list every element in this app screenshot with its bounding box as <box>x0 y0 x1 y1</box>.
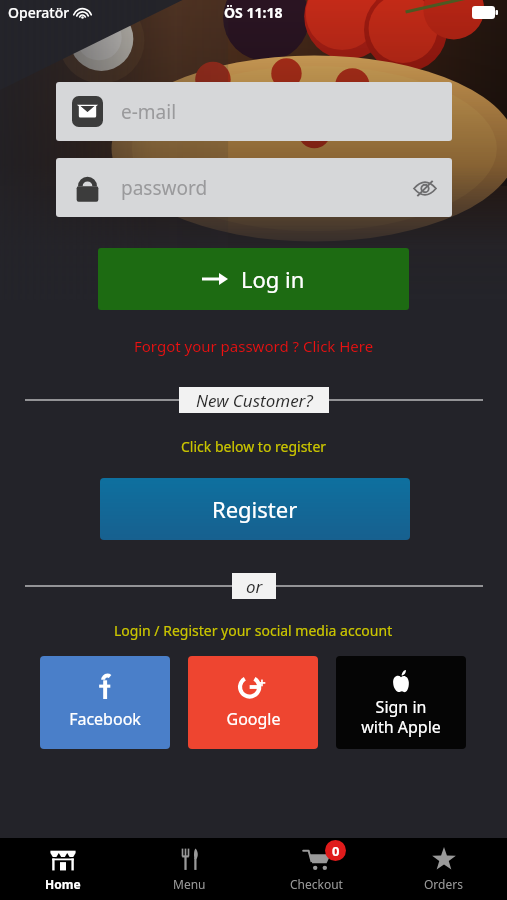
staticText: Checkout <box>290 876 343 892</box>
staticText: ÖS 11:18 <box>224 3 283 22</box>
staticText: Forgot your password ? Click Here <box>134 336 374 356</box>
button[interactable]: Register <box>100 478 410 540</box>
staticText: password <box>121 175 208 201</box>
button[interactable]: Menu <box>126 838 253 900</box>
button[interactable]: Show password <box>404 167 446 209</box>
staticText: e-mail <box>121 99 177 125</box>
button[interactable]: Log in <box>98 248 409 310</box>
button[interactable]: Google <box>188 656 318 749</box>
staticText: Sign in with Apple <box>361 696 441 737</box>
staticText: 0 <box>332 842 340 860</box>
button[interactable]: Forgot your password ? Click Here <box>0 336 507 356</box>
staticText: New Customer? <box>196 389 313 412</box>
button[interactable]: Home <box>0 838 126 900</box>
staticText: Home <box>45 876 81 892</box>
staticText: Operatör <box>8 3 70 22</box>
staticText: Register <box>212 494 298 524</box>
button[interactable]: password <box>56 158 452 217</box>
staticText: or <box>246 575 263 598</box>
button[interactable]: Orders <box>380 838 507 900</box>
button[interactable]: e-mail <box>56 82 452 141</box>
staticText: Facebook <box>69 708 141 730</box>
button[interactable]: 0 <box>253 838 380 900</box>
staticText: Google <box>226 708 281 730</box>
button[interactable]: Facebook <box>40 656 170 749</box>
staticText: Menu <box>173 876 206 892</box>
staticText: Orders <box>424 876 463 892</box>
button[interactable]: Sign in with Apple <box>336 656 466 749</box>
staticText: Login / Register your social media accou… <box>114 621 393 640</box>
staticText: Click below to register <box>181 437 327 456</box>
staticText: Log in <box>241 264 305 294</box>
